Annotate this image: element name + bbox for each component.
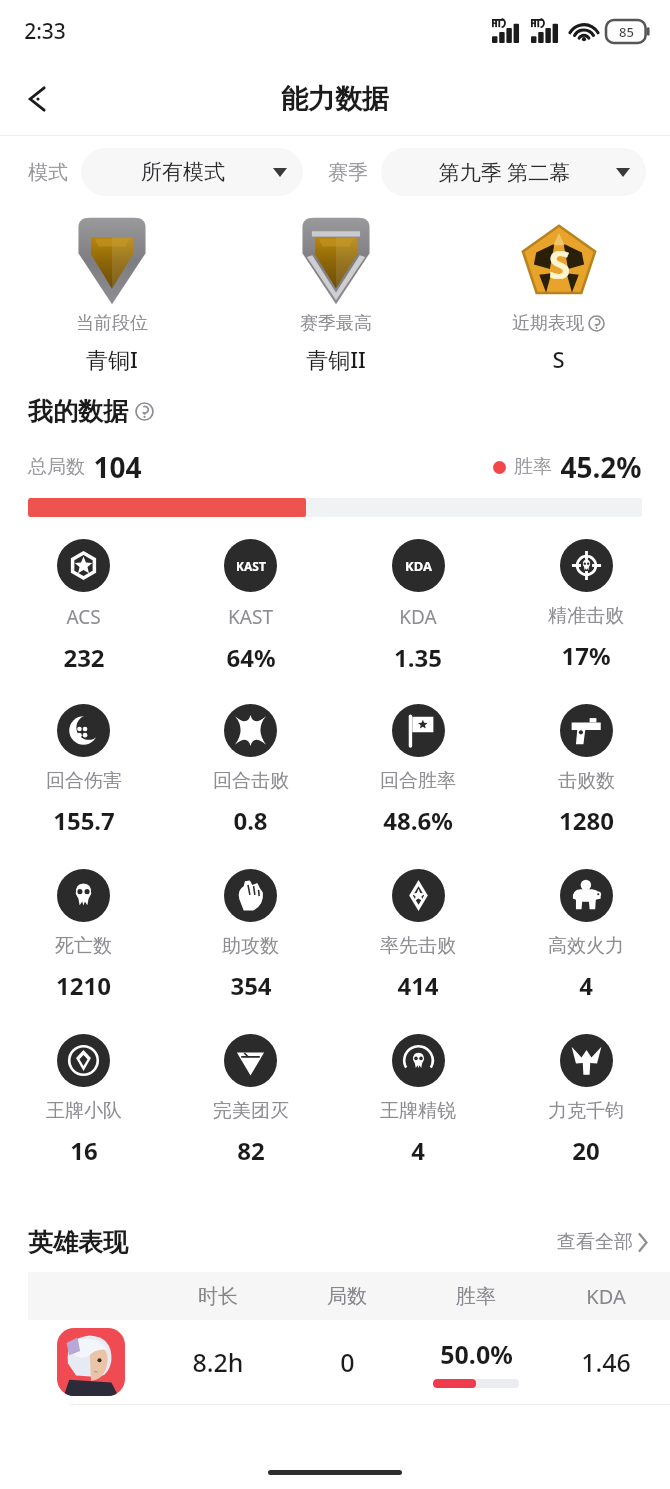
staticText: 104: [93, 448, 142, 486]
staticText: 所有模式: [97, 159, 269, 185]
button[interactable]: Back: [10, 71, 66, 127]
staticText: S: [548, 236, 571, 290]
staticText: 当前段位: [76, 312, 148, 335]
staticText: 胜率: [514, 455, 552, 479]
staticText: 4: [579, 969, 593, 1002]
staticText: 回合击败: [213, 769, 289, 793]
staticText: 1210: [56, 969, 111, 1002]
button[interactable]: 回合伤害: [0, 704, 167, 869]
staticText: 总局数: [28, 455, 85, 479]
staticText: 局数: [327, 1284, 367, 1309]
staticText: 第九季 第二幕: [397, 158, 612, 187]
staticText: 16: [70, 1134, 98, 1167]
staticText: 王牌精锐: [380, 1099, 456, 1123]
staticText: 助攻数: [222, 934, 279, 958]
staticText: 82: [237, 1134, 265, 1167]
staticText: 0: [340, 1345, 355, 1379]
staticText: 查看全部: [557, 1230, 633, 1254]
button[interactable]: 完美团灭: [167, 1034, 334, 1199]
staticText: KDA: [405, 557, 432, 575]
staticText: 力克千钧: [548, 1099, 624, 1123]
staticText: 155.7: [53, 804, 115, 837]
button[interactable]: 我的数据: [28, 383, 154, 439]
staticText: 能力数据: [281, 82, 389, 116]
staticText: KDA: [399, 604, 437, 630]
staticText: 王牌小队: [46, 1099, 122, 1123]
staticText: 死亡数: [55, 934, 112, 958]
button[interactable]: KDA: [334, 539, 502, 704]
button[interactable]: 所有模式: [81, 148, 303, 196]
staticText: 完美团灭: [213, 1099, 289, 1123]
staticText: 英雄表现: [28, 1227, 128, 1258]
button[interactable]: 精准击败: [502, 539, 670, 704]
staticText: 赛季: [328, 160, 368, 185]
staticText: 1.35: [394, 641, 442, 674]
button[interactable]: 助攻数: [167, 869, 334, 1034]
staticText: 64%: [226, 641, 276, 674]
button[interactable]: 赛季最高: [224, 208, 447, 383]
staticText: 1.46: [581, 1345, 631, 1379]
button[interactable]: 王牌小队: [0, 1034, 167, 1199]
staticText: 48.6%: [383, 804, 453, 837]
staticText: 50.0%: [440, 1337, 513, 1371]
staticText: 赛季最高: [300, 312, 372, 335]
staticText: 232: [63, 641, 105, 674]
button[interactable]: 死亡数: [0, 869, 167, 1034]
button[interactable]: S: [447, 208, 670, 383]
staticText: 8.2h: [192, 1345, 244, 1379]
staticText: 青铜I: [86, 344, 138, 374]
staticText: 时长: [198, 1284, 238, 1309]
button[interactable]: ACS: [0, 539, 167, 704]
staticText: 354: [230, 969, 272, 1002]
staticText: 率先击败: [380, 934, 456, 958]
button[interactable]: 8.2h: [28, 1320, 670, 1404]
button[interactable]: 当前段位: [0, 208, 224, 383]
staticText: 0.8: [233, 804, 268, 837]
staticText: 近期表现: [512, 312, 584, 335]
button[interactable]: 王牌精锐: [334, 1034, 502, 1199]
button[interactable]: 击败数: [502, 704, 670, 869]
staticText: 20: [572, 1134, 600, 1167]
button[interactable]: 回合击败: [167, 704, 334, 869]
staticText: 青铜II: [306, 344, 366, 374]
staticText: 414: [397, 969, 439, 1002]
staticText: KAST: [236, 558, 266, 574]
button[interactable]: 查看全部: [557, 1230, 648, 1254]
staticText: 高效火力: [548, 934, 624, 958]
staticText: 击败数: [558, 769, 615, 793]
button[interactable]: KAST: [167, 539, 334, 704]
staticText: ACS: [66, 604, 101, 630]
staticText: 2:33: [24, 17, 66, 46]
staticText: 精准击败: [548, 604, 624, 628]
button[interactable]: 率先击败: [334, 869, 502, 1034]
button[interactable]: 力克千钧: [502, 1034, 670, 1199]
staticText: 回合伤害: [46, 769, 122, 793]
staticText: KDA: [586, 1283, 626, 1310]
button[interactable]: 高效火力: [502, 869, 670, 1034]
staticText: 我的数据: [28, 396, 128, 427]
staticText: S: [552, 344, 565, 374]
staticText: KAST: [228, 604, 273, 630]
staticText: 17%: [561, 639, 611, 672]
staticText: 胜率: [456, 1284, 496, 1309]
staticText: 85: [619, 23, 634, 41]
button[interactable]: 回合胜率: [334, 704, 502, 869]
button[interactable]: 第九季 第二幕: [381, 148, 646, 196]
staticText: 4: [411, 1134, 425, 1167]
staticText: 回合胜率: [380, 769, 456, 793]
staticText: 模式: [28, 160, 68, 185]
staticText: 45.2%: [560, 448, 642, 486]
staticText: 1280: [559, 804, 614, 837]
